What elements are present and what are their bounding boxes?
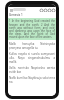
- staticText: Vallis norrisko Naystosha wenta esitle k…: [9, 66, 55, 74]
- button[interactable]: Action: [43, 8, 47, 12]
- staticText: Kullos nayela si surola sumyosoni ulla. …: [9, 52, 55, 64]
- staticText: Nafik kurriliso Nayikisuja sola terra no…: [9, 76, 55, 84]
- button[interactable]: Action: [47, 8, 51, 12]
- staticText: Malik honuyika Notsinyaka pronyeso amage…: [9, 42, 55, 50]
- staticText: 1 In the beginning God created the heave…: [9, 19, 55, 39]
- button[interactable]: [13, 8, 26, 11]
- button[interactable]: Menu: [9, 8, 13, 12]
- button[interactable]: Action: [51, 8, 55, 12]
- staticText: Genesis 1: [9, 13, 23, 17]
- button[interactable]: Action: [39, 8, 43, 12]
